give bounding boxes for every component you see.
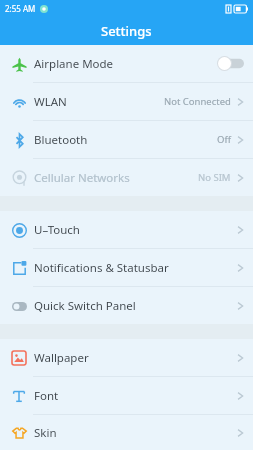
- staticText: Skin: [34, 425, 57, 441]
- staticText: No SIM: [198, 171, 231, 184]
- button[interactable]: Font: [0, 377, 253, 414]
- button[interactable]: Quick Switch Panel: [0, 287, 253, 324]
- button[interactable]: Airplane Mode: [0, 45, 253, 82]
- staticText: Font: [34, 388, 59, 404]
- staticText: Wallpaper: [34, 350, 89, 366]
- staticText: Bluetooth: [34, 132, 88, 148]
- button[interactable]: Airplane Mode toggle: [217, 56, 244, 71]
- staticText: Notifications & Statusbar: [34, 260, 169, 276]
- staticText: U–Touch: [34, 222, 80, 238]
- button[interactable]: Skin: [0, 415, 253, 450]
- button[interactable]: Bluetooth: [0, 121, 253, 158]
- staticText: Airplane Mode: [34, 56, 114, 72]
- staticText: Not Connected: [164, 95, 231, 108]
- button[interactable]: U–Touch: [0, 211, 253, 248]
- button[interactable]: WLAN: [0, 83, 253, 120]
- staticText: Cellular Networks: [34, 170, 130, 186]
- button[interactable]: Notifications & Statusbar: [0, 249, 253, 286]
- button[interactable]: Cellular Networks: [0, 159, 253, 196]
- staticText: Settings: [101, 22, 152, 40]
- staticText: Quick Switch Panel: [34, 298, 136, 314]
- button[interactable]: Wallpaper: [0, 339, 253, 376]
- staticText: WLAN: [34, 94, 67, 110]
- staticText: 2:55 AM: [5, 3, 36, 14]
- staticText: Off: [217, 133, 231, 146]
